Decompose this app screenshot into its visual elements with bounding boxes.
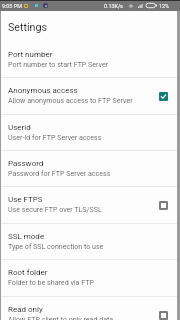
staticText: Port number [8, 50, 53, 59]
staticText: 12% [159, 3, 170, 9]
staticText: Password [8, 159, 44, 168]
button[interactable]: Userid [0, 115, 180, 151]
staticText: Settings [8, 21, 48, 34]
staticText: Use FTPS [8, 195, 43, 204]
staticText: Password for FTP Server access [8, 169, 111, 177]
staticText: Use secure FTP over TLS/SSL [8, 205, 102, 213]
button[interactable]: Root folder [0, 260, 180, 296]
other: Wi-Fi [128, 3, 134, 9]
button[interactable]: Anonymous access [0, 78, 180, 114]
staticText: User-Id for FTP Server access [8, 133, 102, 141]
button[interactable]: Password [0, 151, 180, 187]
staticText: Allow anonymous access to FTP Server [8, 96, 133, 104]
staticText: 0.13K/s [104, 3, 123, 9]
staticText: Read only [8, 305, 43, 314]
staticText: Anonymous access [8, 86, 78, 95]
staticText: Type of SSL connection to use [8, 242, 104, 250]
staticText: Root folder [8, 268, 48, 277]
staticText: Folder to be shared via FTP [8, 278, 94, 286]
staticText: Port number to start FTP Server [8, 60, 109, 68]
button[interactable]: Port number [0, 42, 180, 78]
staticText: Allow FTP client to only read data [8, 315, 114, 320]
button[interactable]: SSL mode [0, 224, 180, 260]
staticText: 9:05 PM [2, 3, 22, 9]
staticText: Userid [8, 123, 31, 132]
staticText: SSL mode [8, 232, 45, 241]
button[interactable]: Read only [0, 297, 180, 320]
button[interactable]: Use FTPS [0, 187, 180, 223]
